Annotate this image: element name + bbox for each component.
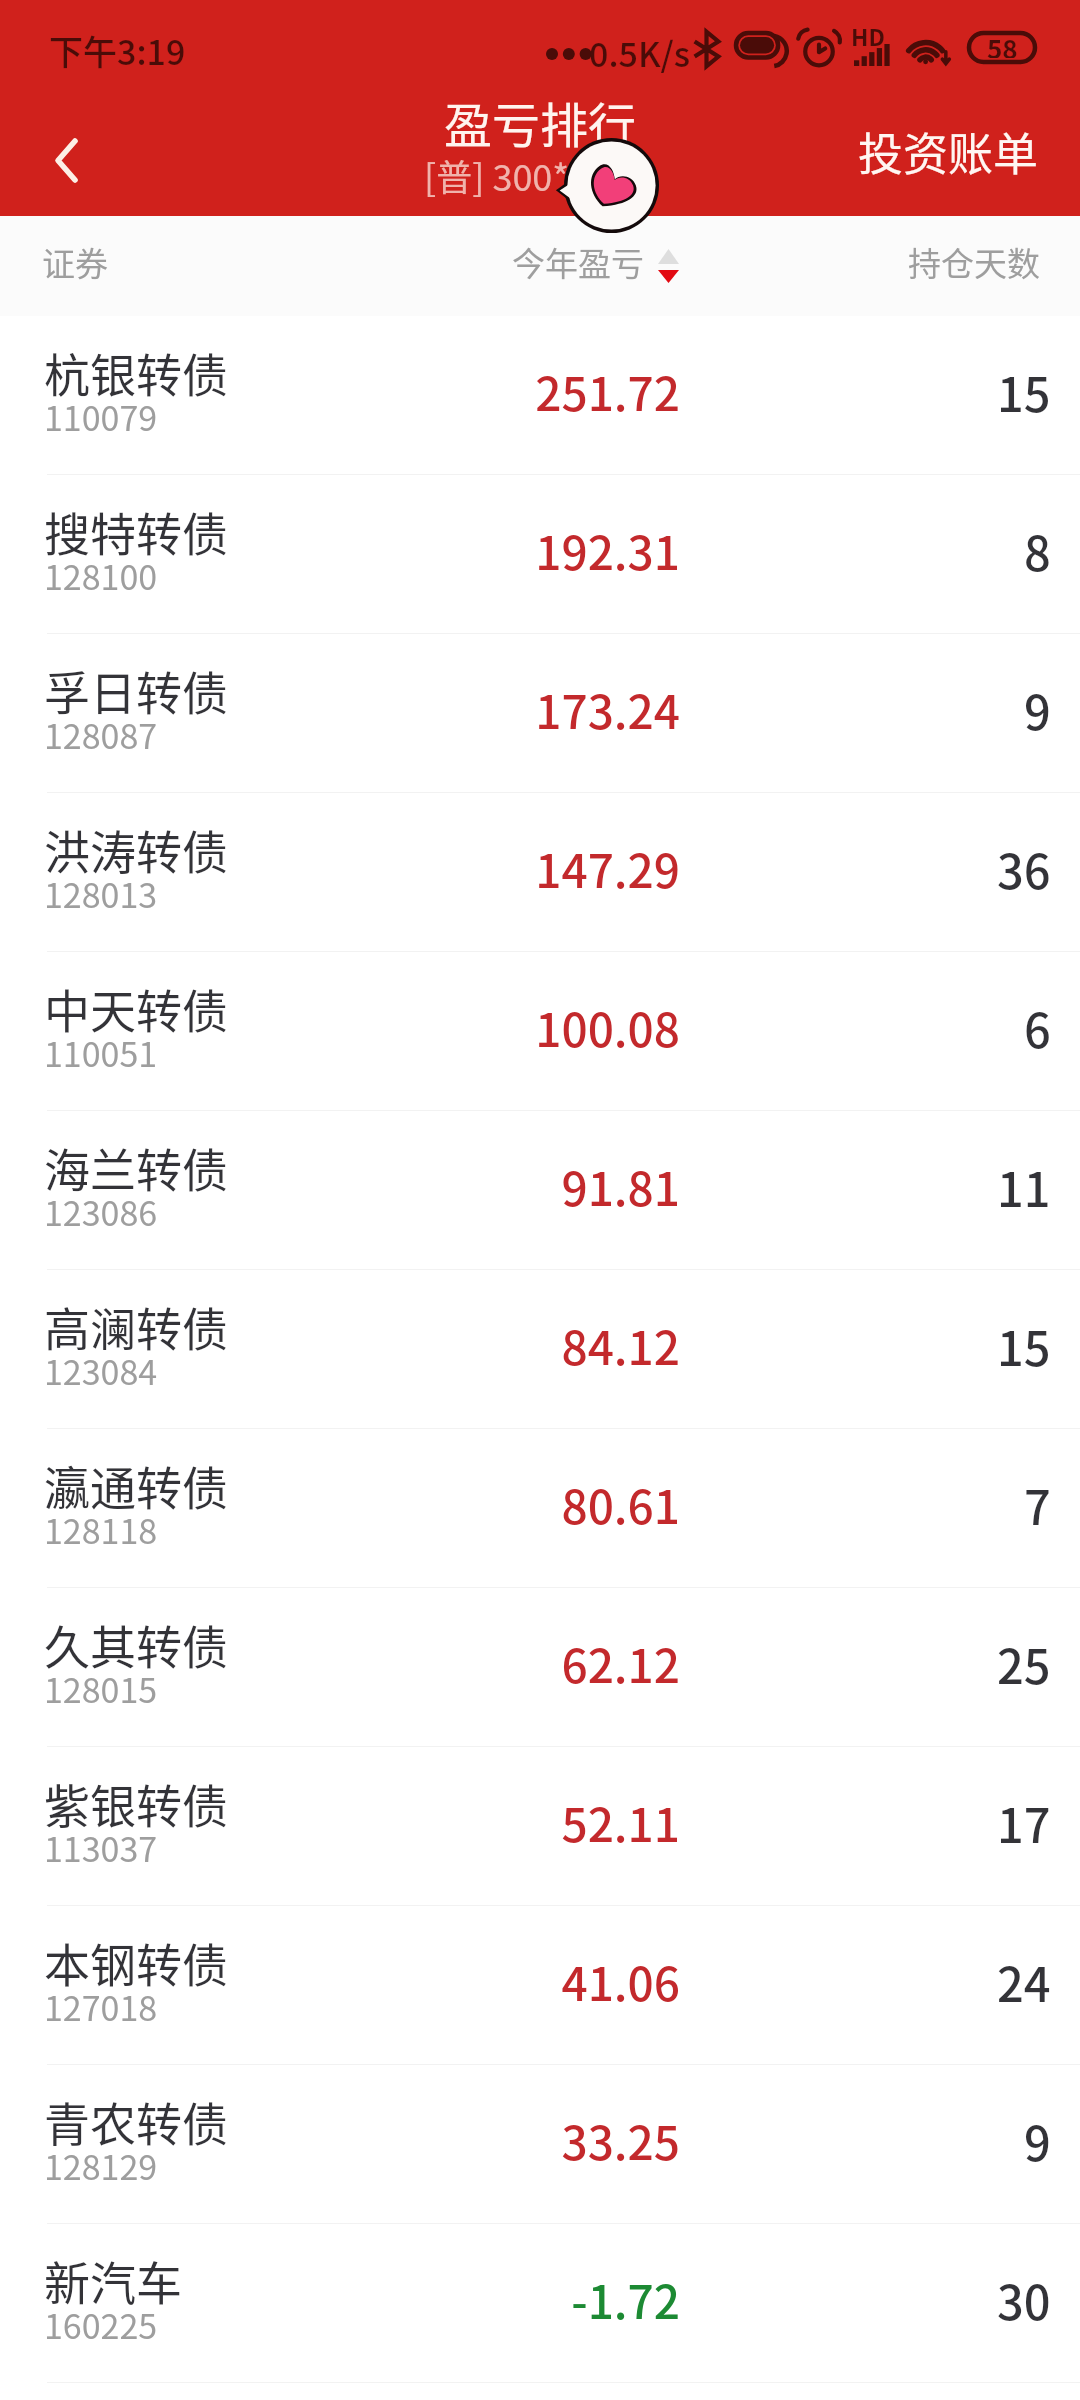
- staticText: 今年盈亏: [512, 238, 644, 286]
- button[interactable]: 搜特转债: [0, 475, 1080, 633]
- staticText: 中天转债: [44, 975, 228, 1042]
- staticText: 证券: [42, 238, 108, 286]
- staticText: 192.31: [380, 517, 680, 584]
- staticText: 高澜转债: [44, 1293, 228, 1360]
- staticText: 下午3:19: [49, 26, 186, 75]
- staticText: 盈亏排行: [444, 87, 637, 157]
- button[interactable]: 洪涛转债: [0, 793, 1080, 951]
- staticText: 青农转债: [44, 2088, 228, 2155]
- button[interactable]: 中天转债: [0, 952, 1080, 1110]
- staticText: 搜特转债: [44, 498, 228, 565]
- button[interactable]: 孚日转债: [0, 634, 1080, 792]
- button[interactable]: 高澜转债: [0, 1270, 1080, 1428]
- staticText: 30: [997, 2265, 1051, 2333]
- button[interactable]: 投资账单: [858, 119, 1039, 184]
- staticText: 147.29: [380, 835, 680, 902]
- staticText: 173.24: [380, 676, 680, 743]
- staticText: 新汽车: [44, 2247, 182, 2314]
- staticText: 瀛通转债: [44, 1452, 228, 1519]
- staticText: 113037: [44, 1823, 158, 1872]
- staticText: 紫银转债: [44, 1770, 228, 1837]
- staticText: -1.72: [380, 2266, 680, 2333]
- staticText: 25: [997, 1629, 1051, 1697]
- staticText: 251.72: [380, 358, 680, 425]
- staticText: 84.12: [380, 1312, 680, 1379]
- staticText: 9: [1024, 675, 1051, 743]
- staticText: 本钢转债: [44, 1929, 228, 1996]
- button[interactable]: 今年盈亏: [502, 224, 689, 300]
- staticText: 128015: [44, 1664, 158, 1713]
- staticText: 杭银转债: [44, 339, 228, 406]
- button[interactable]: 海兰转债: [0, 1111, 1080, 1269]
- staticText: 123086: [44, 1187, 158, 1236]
- staticText: 41.06: [380, 1948, 680, 2015]
- staticText: 128013: [44, 869, 158, 918]
- button[interactable]: Back: [20, 110, 112, 210]
- staticText: 17: [997, 1788, 1051, 1856]
- staticText: 7: [1024, 1470, 1051, 1538]
- staticText: 久其转债: [44, 1611, 228, 1678]
- staticText: 0.5K/s: [589, 28, 691, 77]
- staticText: 36: [997, 834, 1051, 902]
- staticText: 91.81: [380, 1153, 680, 1220]
- staticText: 128087: [44, 710, 158, 759]
- staticText: 15: [997, 1311, 1051, 1379]
- button[interactable]: 青农转债: [0, 2065, 1080, 2223]
- staticText: 58: [987, 29, 1018, 58]
- staticText: [普] 300**: [424, 149, 586, 201]
- staticText: HD: [851, 19, 885, 52]
- staticText: 洪涛转债: [44, 816, 228, 883]
- button[interactable]: 瀛通转债: [0, 1429, 1080, 1587]
- staticText: 11: [997, 1152, 1051, 1220]
- staticText: 127018: [44, 1982, 158, 2031]
- staticText: 8: [1024, 516, 1051, 584]
- staticText: 52.11: [380, 1789, 680, 1856]
- staticText: 33.25: [380, 2107, 680, 2174]
- button[interactable]: 紫银转债: [0, 1747, 1080, 1905]
- staticText: 80.61: [380, 1471, 680, 1538]
- staticText: 100.08: [380, 994, 680, 1061]
- button[interactable]: 本钢转债: [0, 1906, 1080, 2064]
- staticText: 9: [1024, 2106, 1051, 2174]
- staticText: 孚日转债: [44, 657, 228, 724]
- button[interactable]: 新汽车: [0, 2224, 1080, 2382]
- staticText: 投资账单: [858, 119, 1039, 184]
- staticText: 128100: [44, 551, 158, 600]
- staticText: 6: [1024, 993, 1051, 1061]
- staticText: 海兰转债: [44, 1134, 228, 1201]
- staticText: 24: [997, 1947, 1051, 2015]
- staticText: 128129: [44, 2141, 158, 2190]
- staticText: 160225: [44, 2300, 158, 2349]
- staticText: 123084: [44, 1346, 158, 1395]
- staticText: 持仓天数: [908, 238, 1040, 286]
- staticText: 128118: [44, 1505, 158, 1554]
- staticText: 62.12: [380, 1630, 680, 1697]
- button[interactable]: 杭银转债: [0, 316, 1080, 474]
- staticText: 110051: [44, 1028, 158, 1077]
- staticText: 15: [997, 357, 1051, 425]
- button[interactable]: 久其转债: [0, 1588, 1080, 1746]
- staticText: 110079: [44, 392, 158, 441]
